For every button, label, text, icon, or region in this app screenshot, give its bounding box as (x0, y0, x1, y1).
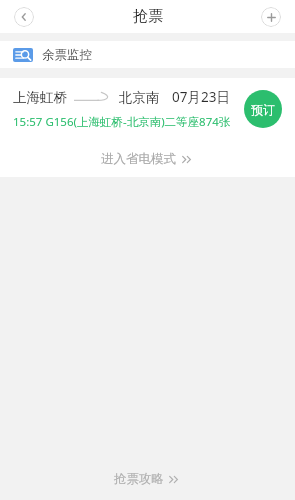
button[interactable]: 预订 (244, 90, 282, 128)
button[interactable]: 抢票攻略 (0, 458, 295, 500)
staticText: 上海虹桥 (13, 89, 67, 106)
button[interactable]: 余票监控 (0, 41, 295, 68)
staticText: 进入省电模式 (101, 151, 176, 167)
staticText: 抢票攻略 (114, 471, 164, 487)
staticText: 北京南 (119, 89, 160, 106)
staticText: 余票监控 (42, 47, 92, 63)
staticText: 07月23日 (172, 88, 230, 106)
button[interactable]: Back (14, 7, 34, 27)
staticText: 预订 (251, 102, 275, 117)
button[interactable]: Add (261, 7, 281, 27)
button[interactable]: 进入省电模式 (0, 140, 295, 177)
staticText: 15:57 G156(上海虹桥-北京南)二等座874张 (13, 114, 231, 130)
button[interactable]: 上海虹桥 (0, 78, 295, 140)
staticText: 抢票 (133, 7, 163, 26)
